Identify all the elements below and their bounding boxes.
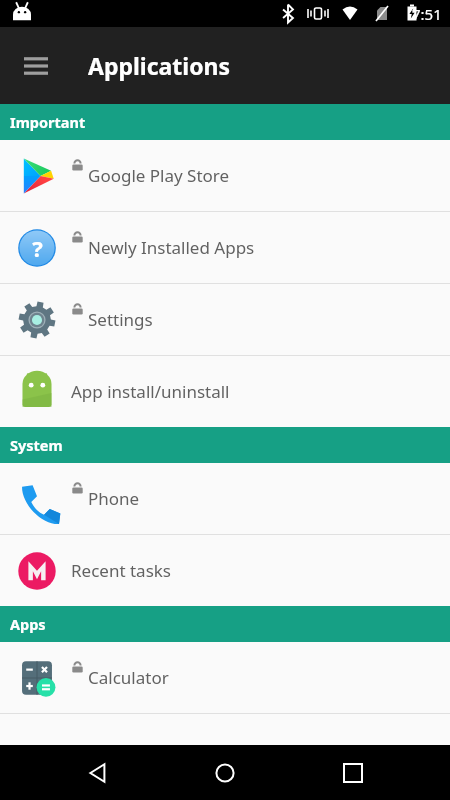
button[interactable]: Recent tasks bbox=[0, 535, 450, 606]
button[interactable]: App install/uninstall bbox=[0, 356, 450, 427]
staticText: Applications bbox=[88, 50, 231, 81]
staticText: Settings bbox=[88, 308, 153, 331]
staticText: Recent tasks bbox=[71, 559, 172, 582]
staticText: Calculator bbox=[88, 666, 169, 689]
staticText: Newly Installed Apps bbox=[88, 236, 255, 259]
button[interactable]: ? bbox=[0, 212, 450, 283]
button[interactable]: Home bbox=[195, 745, 255, 800]
button[interactable]: Back bbox=[68, 745, 128, 800]
staticText: Google Play Store bbox=[88, 164, 230, 187]
button[interactable]: Calculator bbox=[0, 642, 450, 713]
staticText: System bbox=[10, 435, 63, 455]
staticText: Apps bbox=[10, 614, 46, 634]
button[interactable]: Recent apps bbox=[323, 745, 383, 800]
staticText: ? bbox=[32, 233, 43, 263]
staticText: App install/uninstall bbox=[71, 380, 230, 403]
staticText: 7:51 bbox=[412, 4, 442, 24]
button[interactable]: Settings bbox=[0, 284, 450, 355]
button[interactable]: Phone bbox=[0, 463, 450, 534]
staticText: Phone bbox=[88, 487, 140, 510]
button[interactable]: Open navigation menu bbox=[12, 42, 60, 90]
staticText: Important bbox=[10, 112, 86, 132]
button[interactable]: Google Play Store bbox=[0, 140, 450, 211]
